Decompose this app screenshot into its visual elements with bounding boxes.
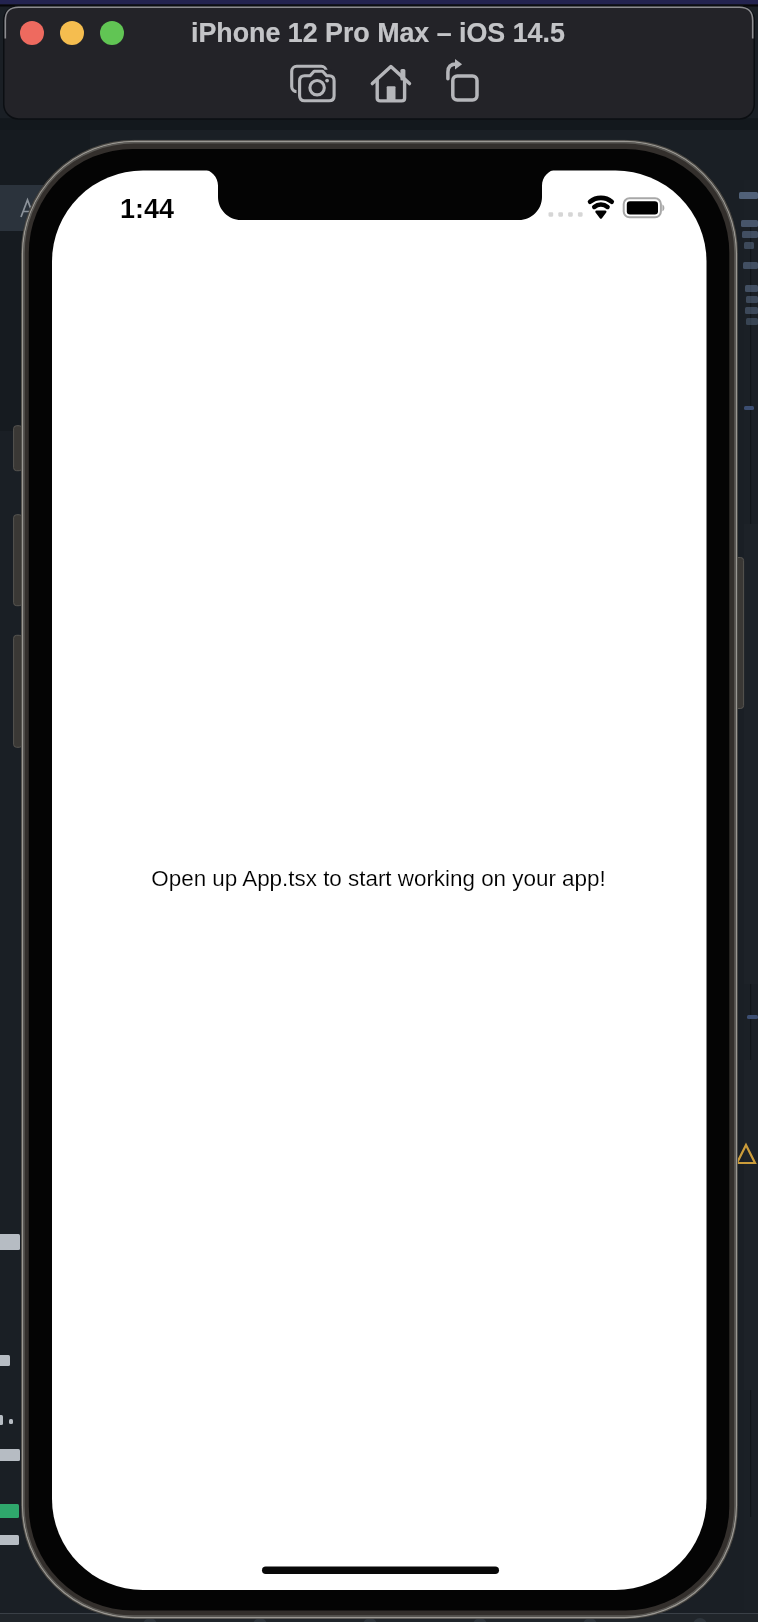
button[interactable]: Take screenshot xyxy=(285,58,345,112)
button[interactable]: Rotate xyxy=(435,55,495,112)
staticText: iPhone 12 Pro Max – iOS 14.5 xyxy=(191,18,565,48)
button[interactable]: Minimise window xyxy=(60,21,84,45)
button[interactable]: Home xyxy=(360,58,420,112)
button[interactable]: Close window xyxy=(20,21,44,45)
staticText: 1:44 xyxy=(120,194,175,224)
staticText: Open up App.tsx to start working on your… xyxy=(151,866,606,891)
button[interactable]: Zoom window xyxy=(100,21,124,45)
